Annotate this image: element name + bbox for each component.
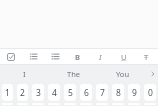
button[interactable]: 3 bbox=[32, 84, 44, 101]
staticText: 7 bbox=[100, 87, 105, 99]
button[interactable]: Italic bbox=[89, 48, 112, 65]
staticText: U bbox=[121, 52, 127, 62]
button[interactable]: 9 bbox=[128, 84, 140, 101]
staticText: 3 bbox=[36, 87, 41, 99]
button[interactable]: Checklist bbox=[0, 48, 22, 65]
staticText: 5 bbox=[68, 87, 73, 99]
staticText: I bbox=[23, 69, 26, 79]
button[interactable]: 6 bbox=[80, 84, 92, 101]
button[interactable]: Numbered list bbox=[44, 48, 66, 65]
button[interactable]: Bulleted list bbox=[22, 48, 44, 65]
button[interactable]: Bold bbox=[66, 48, 89, 65]
staticText: I bbox=[99, 52, 102, 62]
staticText: T bbox=[144, 52, 149, 62]
staticText: 8 bbox=[116, 87, 121, 99]
button[interactable]: 5 bbox=[64, 84, 76, 101]
staticText: 0 bbox=[148, 87, 153, 99]
button[interactable]: 4 bbox=[48, 84, 60, 101]
staticText: 2 bbox=[20, 87, 25, 99]
button[interactable]: I bbox=[0, 65, 49, 83]
staticText: The bbox=[67, 69, 81, 79]
button[interactable]: Underline bbox=[112, 48, 135, 65]
button[interactable]: You bbox=[98, 65, 147, 83]
staticText: 6 bbox=[84, 87, 89, 99]
staticText: 4 bbox=[52, 87, 57, 99]
button[interactable]: 0 bbox=[144, 84, 156, 101]
staticText: 9 bbox=[132, 87, 137, 99]
button[interactable]: More suggestions bbox=[147, 65, 158, 83]
staticText: B bbox=[75, 52, 80, 62]
staticText: You bbox=[116, 69, 130, 79]
button[interactable]: 2 bbox=[17, 84, 28, 101]
button[interactable]: 7 bbox=[96, 84, 108, 101]
button[interactable]: Strikethrough bbox=[135, 48, 158, 65]
button[interactable]: 8 bbox=[112, 84, 124, 101]
button[interactable]: The bbox=[49, 65, 98, 83]
button[interactable]: 1 bbox=[2, 84, 13, 101]
staticText: 1 bbox=[5, 87, 10, 99]
